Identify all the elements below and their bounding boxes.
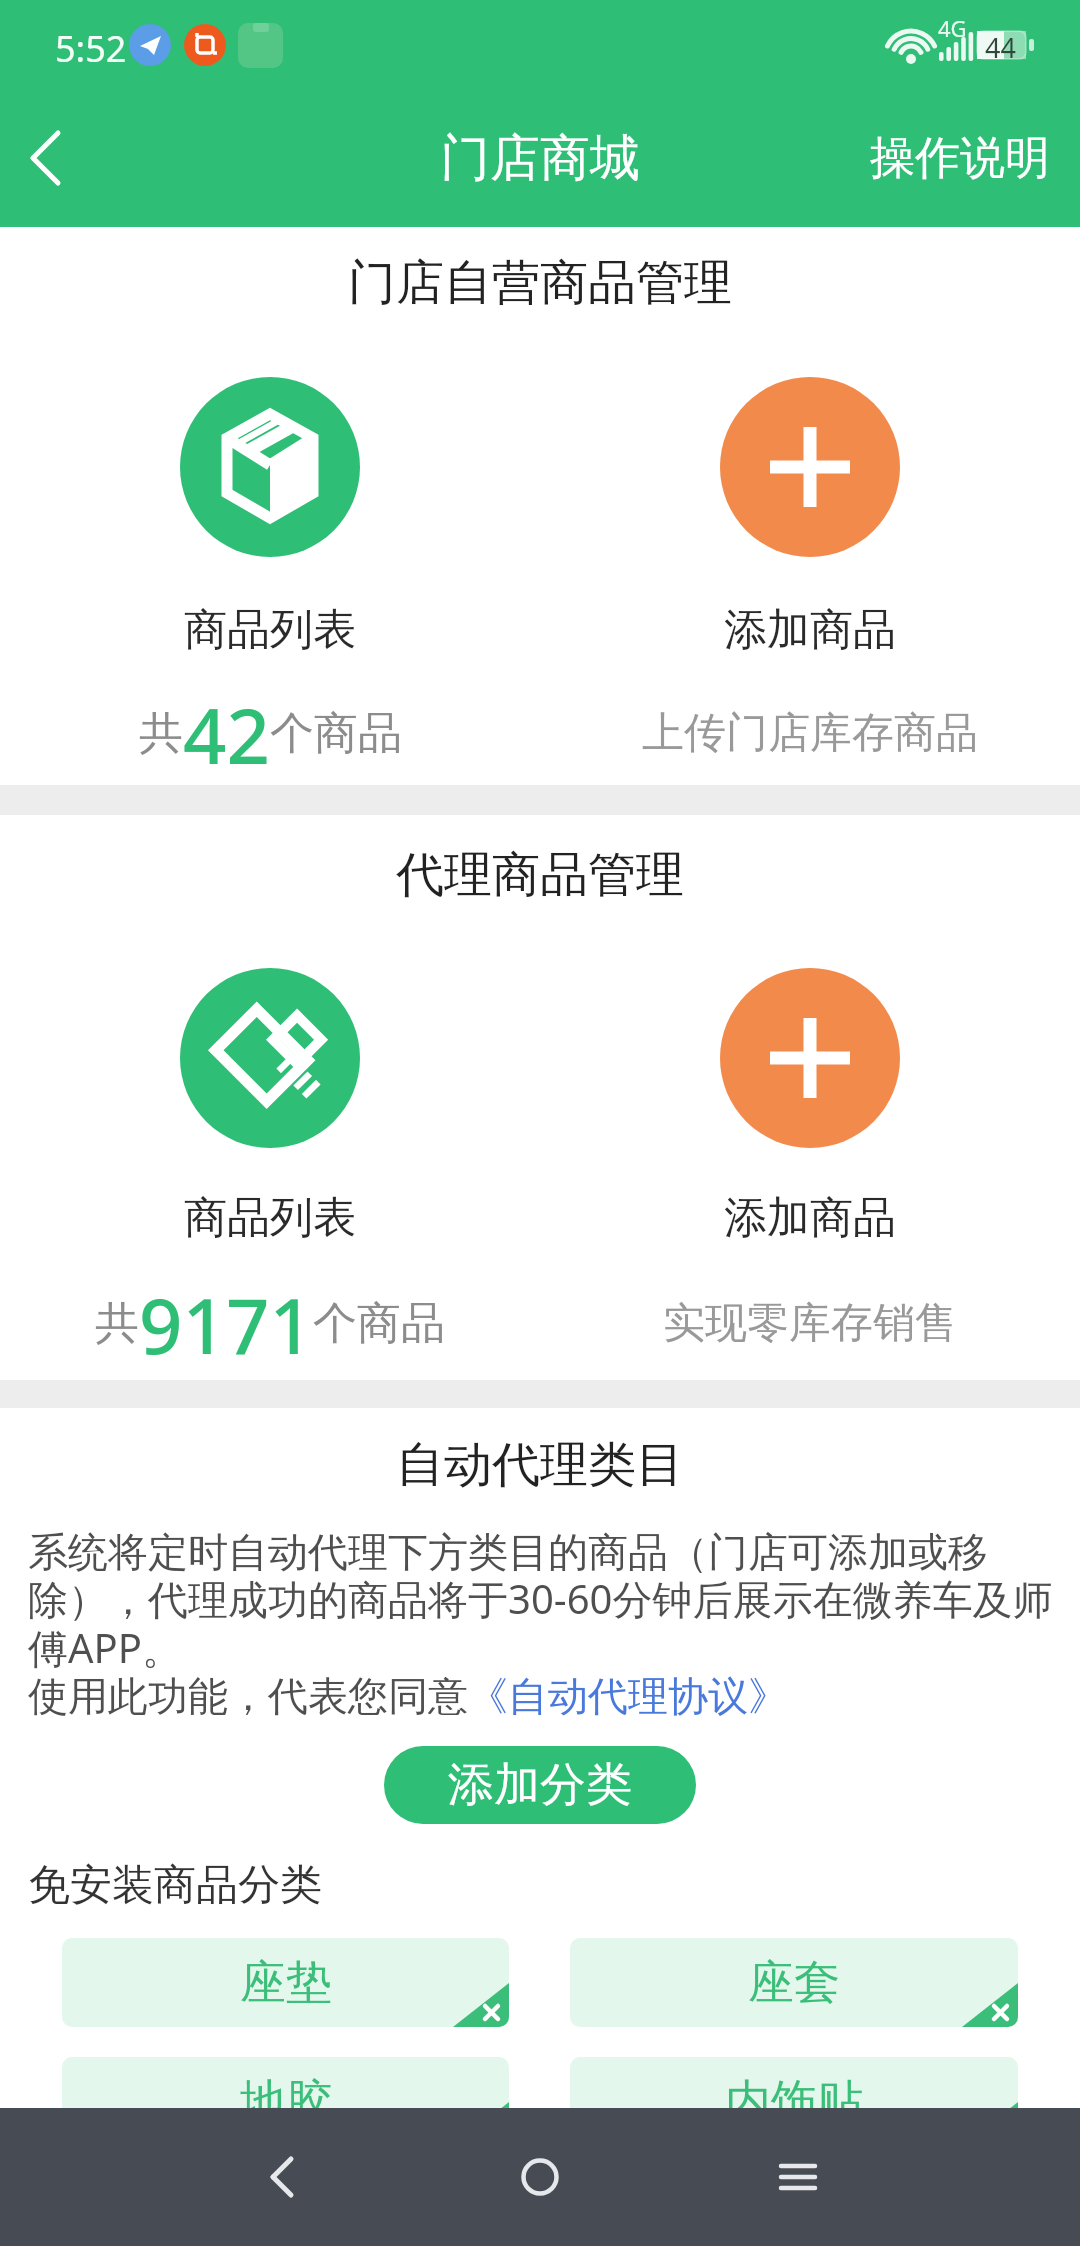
button[interactable] (470, 2108, 610, 2246)
button[interactable]: 地胶 (62, 2057, 509, 2146)
staticText: 44 (985, 29, 1016, 66)
staticText: 操作说明 (870, 130, 1050, 187)
button[interactable]: 座套 (570, 1938, 1018, 2027)
staticText: 共 (139, 706, 183, 761)
staticText: 添加商品 (724, 1191, 896, 1245)
staticText: 个商品 (270, 706, 402, 761)
staticText: 商品列表 (184, 603, 356, 657)
staticText: 商品列表 (184, 1191, 356, 1245)
button[interactable] (212, 2108, 352, 2246)
button[interactable]: 添加分类 (384, 1746, 696, 1824)
staticText: 座套 (748, 1954, 840, 2012)
button[interactable]: 商品列表 (0, 968, 540, 1373)
staticText: 添加商品 (724, 603, 896, 657)
staticText: 5:52 (55, 24, 127, 73)
staticText: 自动代理类目 (396, 1435, 684, 1495)
button[interactable]: 座垫 (62, 1938, 509, 2027)
staticText: 4G (938, 13, 967, 43)
button[interactable]: 商品列表 (0, 377, 540, 783)
button[interactable] (728, 2108, 868, 2246)
staticText: 实现零库存销售 (663, 1297, 957, 1350)
button[interactable]: 添加商品 (540, 377, 1080, 783)
staticText: 9171 (139, 1273, 313, 1373)
staticText: 座垫 (240, 1954, 332, 2012)
button[interactable] (0, 90, 100, 227)
staticText: 地胶 (240, 2073, 332, 2131)
staticText: 内饰贴 (725, 2073, 863, 2131)
staticText: 添加分类 (448, 1756, 632, 1814)
staticText: 42 (183, 683, 270, 783)
staticText: 共 (95, 1296, 139, 1351)
staticText: 代理商品管理 (396, 845, 684, 905)
button[interactable]: 添加商品 (540, 968, 1080, 1373)
staticText: 免安装商品分类 (28, 1859, 322, 1912)
staticText: 门店自营商品管理 (348, 253, 732, 313)
staticText: 个商品 (313, 1296, 445, 1351)
staticText: 门店商城 (440, 127, 640, 190)
button[interactable]: 内饰贴 (570, 2057, 1018, 2146)
button[interactable]: 系统将定时自动代理下方类目的商品（门店可添加或移 除），代理成功的商品将于30-… (28, 1527, 1053, 1722)
button[interactable]: 操作说明 (870, 130, 1050, 187)
staticText: 上传门店库存商品 (642, 707, 978, 760)
